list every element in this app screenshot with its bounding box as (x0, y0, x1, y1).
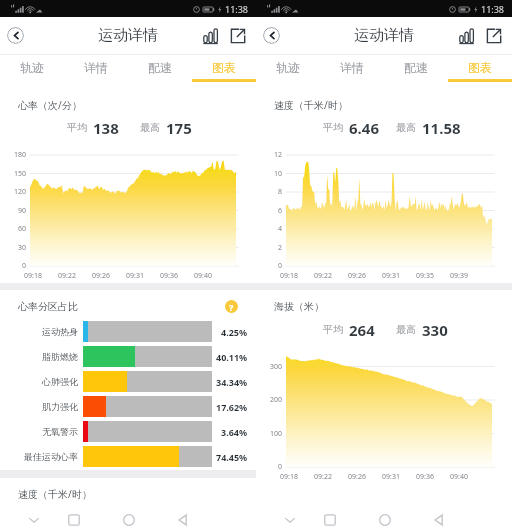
staticText: 150 (13, 169, 26, 179)
staticText: 09:18 (24, 271, 42, 281)
staticText: 脂肪燃烧 (42, 351, 78, 362)
staticText: 30 (17, 243, 26, 253)
staticText: 09:26 (92, 271, 110, 281)
staticText: 海拔（米） (274, 300, 324, 313)
staticText: 轨迹 (276, 60, 300, 75)
staticText: 12 (273, 150, 282, 160)
staticText: 心肺强化 (42, 376, 78, 387)
staticText: 138 (93, 118, 119, 136)
staticText: 17.62% (216, 401, 248, 413)
staticText: 180 (13, 150, 26, 160)
button[interactable]: 配速 (128, 55, 192, 82)
staticText: 300 (269, 362, 282, 372)
staticText: 330 (422, 320, 448, 338)
staticText: 175 (166, 118, 192, 136)
button[interactable]: Hide (279, 509, 300, 530)
staticText: 09:22 (58, 271, 76, 281)
staticText: 09:39 (450, 271, 468, 281)
staticText: 心率（次/分） (18, 98, 82, 112)
staticText: 11.58 (422, 118, 461, 136)
staticText: 4.25% (221, 326, 248, 338)
button[interactable] (83, 321, 212, 342)
staticText: 11:38 (481, 3, 505, 15)
staticText: 2 (277, 243, 282, 253)
button[interactable] (83, 396, 212, 417)
staticText: 详情 (340, 60, 364, 75)
staticText: 运动详情 (354, 26, 414, 45)
staticText: 09:26 (348, 472, 366, 482)
staticText: 最高 (396, 121, 416, 134)
staticText: 运动热身 (42, 326, 78, 337)
staticText: 74.45% (216, 451, 248, 463)
staticText: 34.34% (216, 376, 248, 388)
button[interactable] (83, 421, 212, 442)
button[interactable]: 详情 (320, 55, 384, 82)
button[interactable]: 图表 (192, 55, 256, 82)
staticText: 264 (349, 320, 375, 338)
staticText: 6.46 (349, 118, 379, 136)
button[interactable]: Back (263, 27, 280, 44)
staticText: 6 (277, 206, 282, 216)
staticText: 配速 (404, 60, 428, 75)
staticText: 平均 (67, 121, 87, 134)
button[interactable]: Statistics (201, 26, 220, 45)
staticText: 无氧警示 (42, 426, 78, 437)
button[interactable] (83, 371, 212, 392)
staticText: 速度（千米/时） (18, 487, 92, 501)
staticText: 肌力强化 (42, 401, 78, 412)
button[interactable]: Back (7, 27, 24, 44)
staticText: 11:38 (225, 3, 249, 15)
staticText: 09:31 (382, 472, 400, 482)
staticText: 09:31 (382, 271, 400, 281)
staticText: 速度（千米/时） (274, 98, 348, 112)
button[interactable]: Hide (23, 509, 44, 530)
button[interactable]: Back (172, 509, 193, 530)
staticText: 平均 (323, 121, 343, 134)
staticText: 8 (277, 187, 282, 197)
staticText: 09:18 (280, 271, 298, 281)
staticText: 120 (13, 187, 26, 197)
button[interactable] (83, 346, 212, 367)
button[interactable]: Statistics (457, 26, 476, 45)
staticText: 心率分区占比 (18, 300, 78, 313)
button[interactable]: 轨迹 (0, 55, 64, 82)
staticText: 09:22 (314, 271, 332, 281)
staticText: 09:36 (416, 472, 434, 482)
staticText: 09:31 (126, 271, 144, 281)
staticText: 0 (21, 261, 26, 271)
button[interactable]: 详情 (64, 55, 128, 82)
staticText: 最高 (396, 323, 416, 336)
staticText: 0 (277, 261, 282, 271)
staticText: 60 (17, 224, 26, 234)
staticText: 最佳运动心率 (24, 451, 78, 462)
button[interactable]: Home (118, 509, 139, 530)
staticText: 3.64% (221, 426, 248, 438)
button[interactable]: Help (225, 300, 238, 313)
staticText: 09:26 (348, 271, 366, 281)
staticText: 40.11% (216, 351, 248, 363)
button[interactable] (83, 446, 212, 467)
button[interactable]: Recents (63, 509, 84, 530)
staticText: 100 (269, 429, 282, 439)
staticText: 09:40 (194, 271, 212, 281)
button[interactable]: Home (374, 509, 395, 530)
staticText: 图表 (468, 60, 492, 75)
staticText: 运动详情 (98, 26, 158, 45)
staticText: 09:35 (416, 271, 434, 281)
staticText: ? (229, 301, 234, 313)
button[interactable]: Share (228, 26, 247, 45)
button[interactable]: 图表 (448, 55, 512, 82)
button[interactable]: Share (484, 26, 503, 45)
staticText: 最高 (140, 121, 160, 134)
button[interactable]: Recents (319, 509, 340, 530)
staticText: 平均 (323, 323, 343, 336)
staticText: 图表 (212, 60, 236, 75)
button[interactable]: 轨迹 (256, 55, 320, 82)
staticText: 10 (273, 169, 282, 179)
staticText: 详情 (84, 60, 108, 75)
staticText: 轨迹 (20, 60, 44, 75)
button[interactable]: Back (428, 509, 449, 530)
button[interactable]: 配速 (384, 55, 448, 82)
staticText: 90 (17, 206, 26, 216)
staticText: 200 (269, 395, 282, 405)
